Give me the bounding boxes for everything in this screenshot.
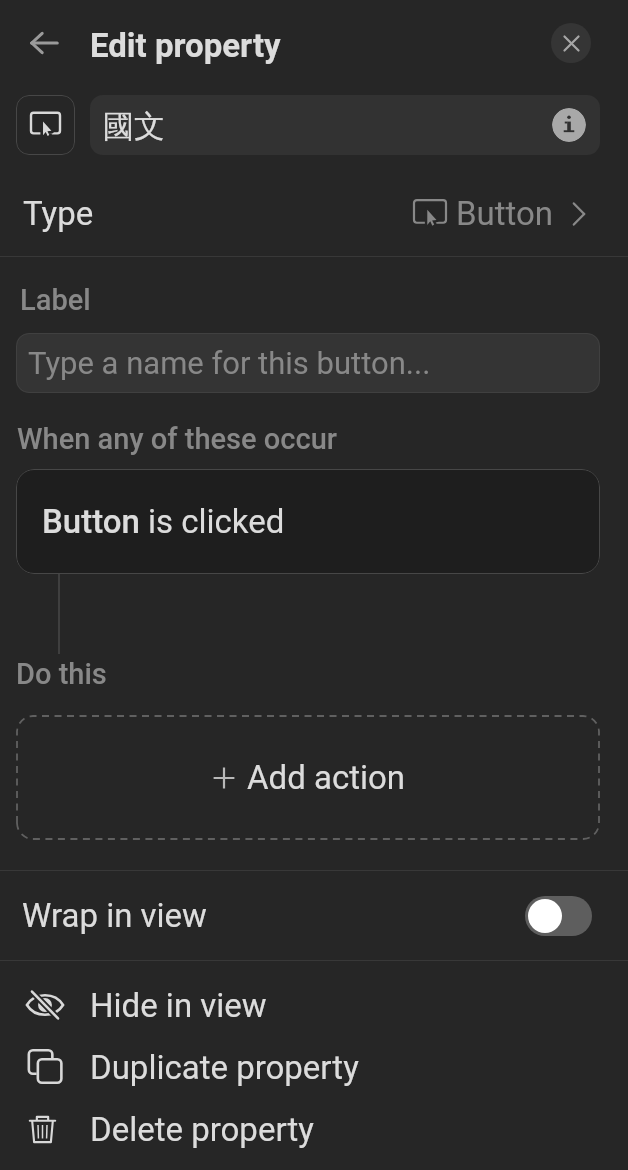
button[interactable]: Hide in view	[0, 974, 628, 1036]
button[interactable]: Wrap in view toggle	[525, 896, 592, 936]
button[interactable]: Delete property	[0, 1098, 628, 1160]
button[interactable]: Close	[551, 23, 591, 63]
staticText: Hide in view	[90, 986, 267, 1025]
staticText: Label	[20, 283, 91, 317]
staticText: Delete property	[90, 1110, 314, 1149]
staticText: Do this	[16, 657, 107, 691]
staticText: Type	[23, 194, 94, 233]
staticText: When any of these occur	[17, 422, 338, 456]
button[interactable]: Add action	[16, 715, 600, 840]
staticText: Type a name for this button...	[28, 345, 431, 381]
button[interactable]: 國文	[90, 95, 600, 155]
button[interactable]: Property type	[16, 95, 75, 155]
staticText: Duplicate property	[90, 1048, 359, 1087]
button[interactable]: Info	[552, 108, 586, 142]
button[interactable]: Type	[0, 171, 628, 256]
staticText: Wrap in view	[22, 896, 207, 935]
button[interactable]: Back	[20, 19, 68, 67]
staticText: Button is clicked	[42, 502, 285, 541]
button[interactable]: Type a name for this button...	[16, 333, 600, 393]
staticText: Button	[456, 194, 554, 233]
button[interactable]: Button is clicked	[16, 469, 600, 574]
button[interactable]: Duplicate property	[0, 1036, 628, 1098]
staticText: Edit property	[90, 26, 281, 65]
staticText: 國文	[103, 107, 165, 146]
staticText: Add action	[247, 758, 406, 797]
button[interactable]: Wrap in view	[0, 871, 628, 960]
